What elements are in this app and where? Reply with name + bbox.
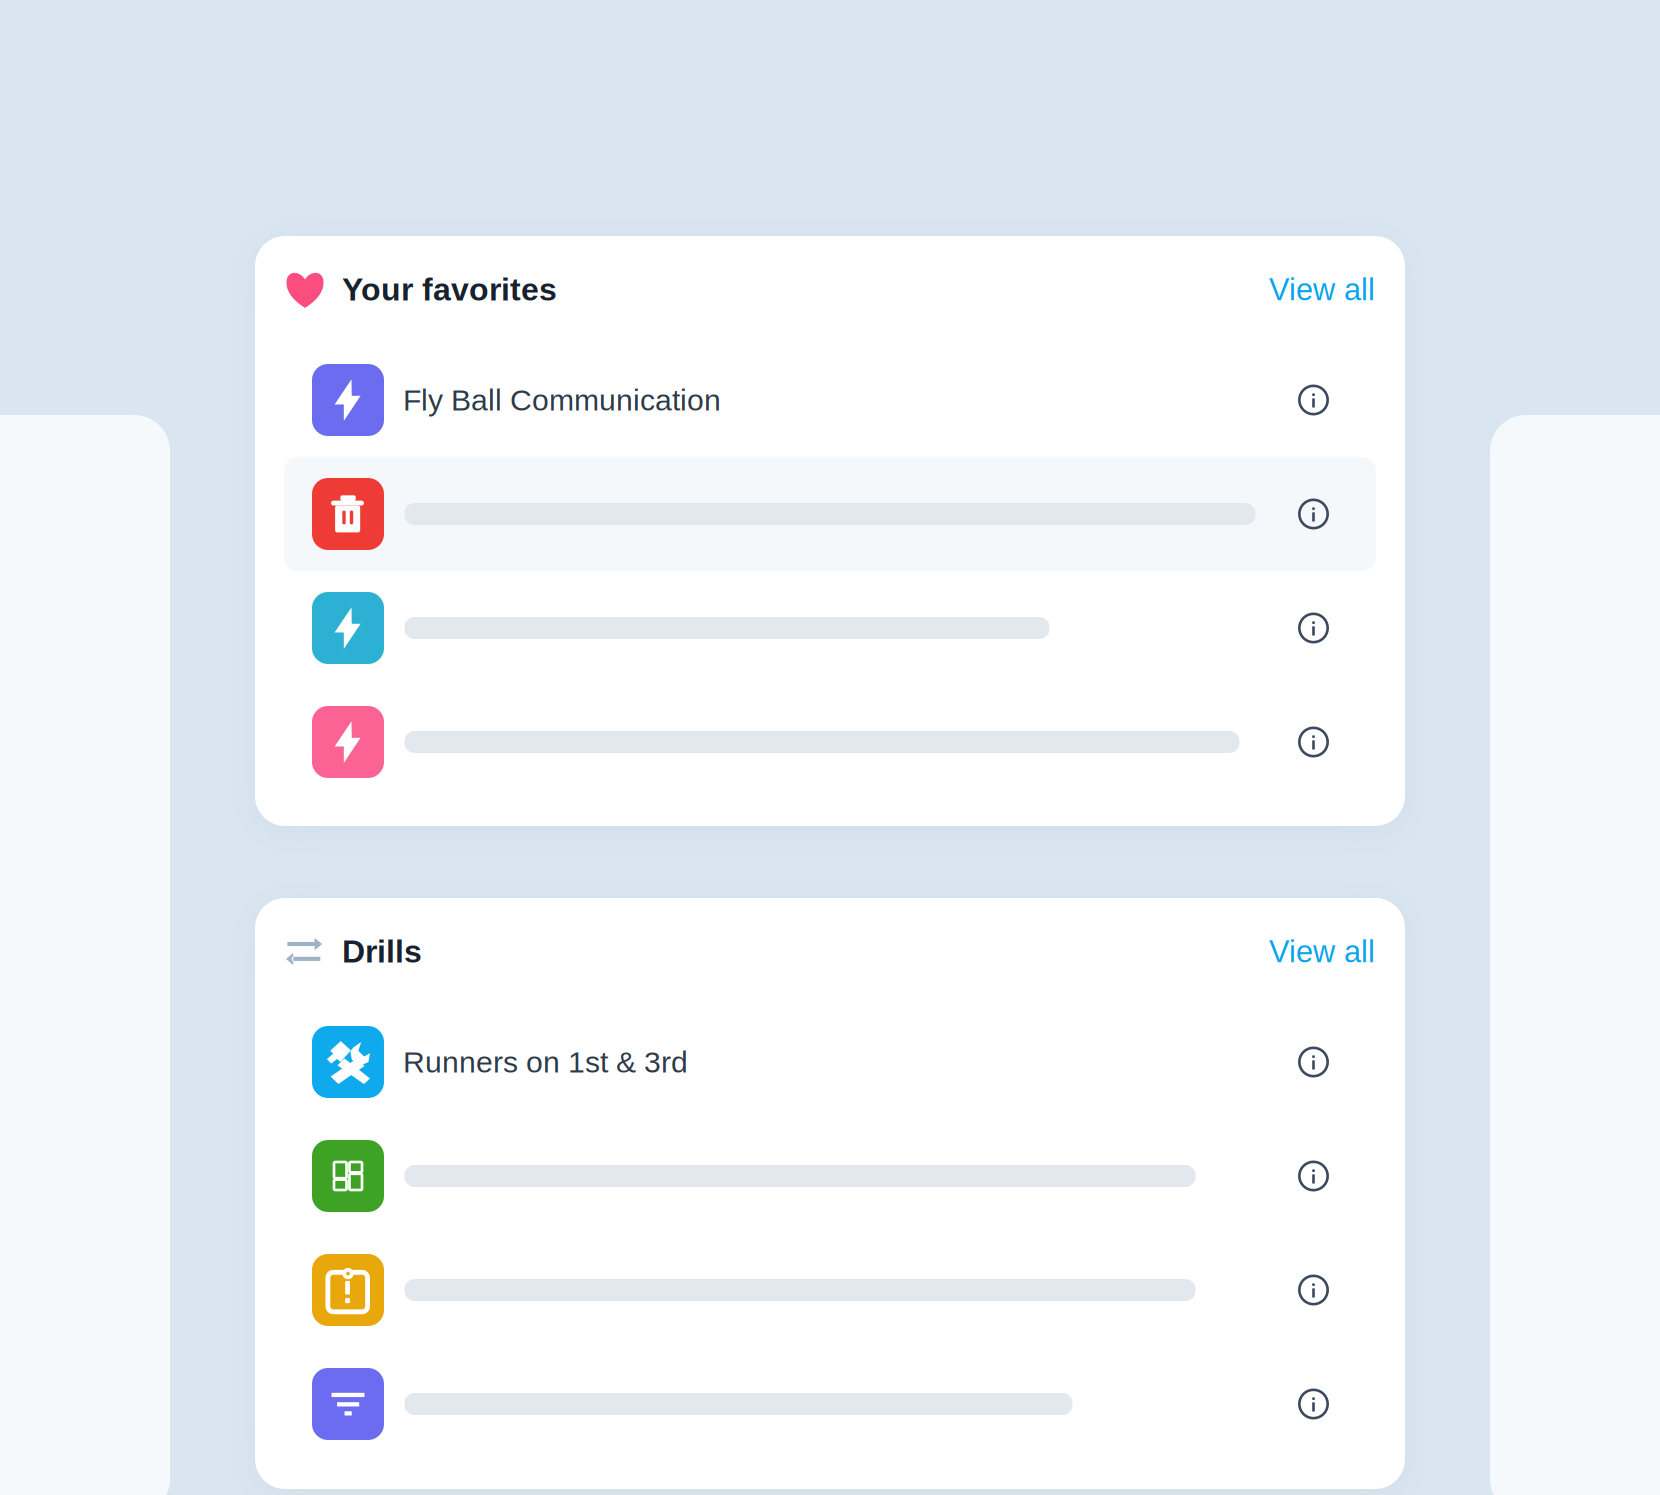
button[interactable]: More info — [1286, 1376, 1341, 1431]
staticText: View all — [1269, 934, 1375, 969]
button[interactable]: View all — [1255, 256, 1389, 323]
button[interactable]: More info — [1286, 372, 1341, 427]
button[interactable]: More info — [1286, 1034, 1341, 1089]
button[interactable]: More info — [1286, 1262, 1341, 1317]
button[interactable]: Drill — [255, 1233, 1405, 1347]
button[interactable]: More info — [1286, 714, 1341, 769]
button[interactable]: More info — [1286, 1148, 1341, 1203]
button[interactable]: More info — [1286, 486, 1341, 541]
staticText: Fly Ball Communication — [403, 383, 721, 417]
button[interactable]: Favorite item — [255, 457, 1405, 571]
button[interactable]: Runners on 1st & 3rd — [255, 1005, 1405, 1119]
button[interactable]: View all — [1255, 918, 1389, 985]
button[interactable]: Fly Ball Communication — [255, 343, 1405, 457]
staticText: Drills — [342, 934, 422, 969]
button[interactable]: Drill — [255, 1347, 1405, 1461]
staticText: Runners on 1st & 3rd — [403, 1045, 688, 1079]
button[interactable]: Favorite item — [255, 571, 1405, 685]
staticText: View all — [1269, 272, 1375, 307]
button[interactable]: Favorite item — [255, 685, 1405, 799]
button[interactable]: Drill — [255, 1119, 1405, 1233]
button[interactable]: More info — [1286, 600, 1341, 655]
staticText: Your favorites — [342, 272, 557, 307]
